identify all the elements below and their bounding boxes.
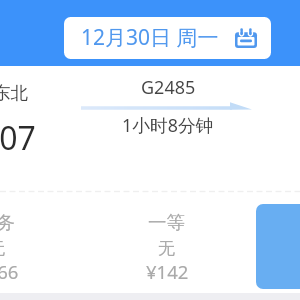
staticText: 1小时8分钟 — [122, 113, 214, 137]
staticText: 无 — [158, 238, 175, 259]
staticText: ¥866 — [0, 259, 19, 284]
button[interactable]: 12月30日 周一 — [64, 17, 271, 59]
staticText: 东北 — [0, 82, 28, 104]
staticText: 商务 — [0, 211, 15, 234]
staticText: 一等 — [148, 211, 185, 234]
staticText: 12月30日 周一 — [81, 23, 219, 52]
button[interactable]: 预订 — [256, 204, 300, 289]
staticText: ¥142 — [146, 259, 189, 284]
staticText: 无 — [0, 238, 5, 259]
button[interactable]: 东北 — [0, 66, 300, 293]
staticText: G2485 — [141, 75, 196, 100]
button[interactable]: 选择日期 — [235, 26, 257, 48]
staticText: 07:07 — [0, 116, 36, 160]
